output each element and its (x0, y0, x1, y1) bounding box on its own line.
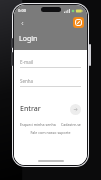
button[interactable]: Voltar (17, 18, 27, 28)
staticText: Fale com nosso suporte (30, 130, 71, 135)
staticText: 0:00 (18, 8, 26, 13)
staticText: Senha (20, 78, 34, 84)
button[interactable]: Fale com nosso suporte (20, 130, 81, 135)
button[interactable]: Logo do aplicativo (73, 17, 84, 28)
button[interactable]: Senha (20, 78, 81, 87)
staticText: Esqueci minha senha (20, 122, 56, 127)
staticText: Login (19, 34, 38, 44)
button[interactable]: Entrar (20, 103, 41, 115)
staticText: Cadastre-se (61, 122, 81, 127)
button[interactable]: E-mail (20, 59, 81, 68)
staticText: Entrar (20, 104, 41, 114)
button[interactable]: Cadastre-se (61, 122, 81, 127)
staticText: E-mail (20, 59, 34, 65)
button[interactable]: Esqueci minha senha (20, 122, 56, 127)
button[interactable]: Entrar (70, 104, 81, 115)
